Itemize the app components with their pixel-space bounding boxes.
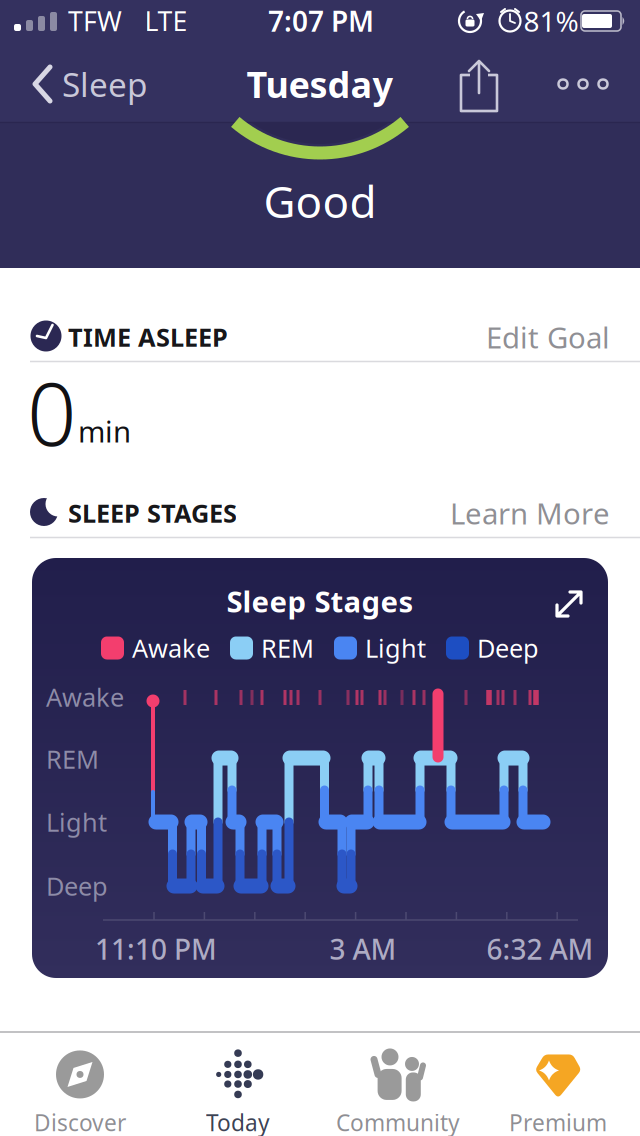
staticText: Discover — [34, 1107, 126, 1136]
staticText: TIME ASLEEP — [68, 320, 228, 354]
staticText: REM — [261, 631, 314, 665]
staticText: Sleep Stages — [226, 581, 413, 620]
staticText: Awake — [46, 680, 124, 714]
staticText: min — [78, 411, 131, 450]
staticText: 81% — [523, 2, 578, 40]
button[interactable]: Premium — [483, 1045, 633, 1136]
staticText: LTE — [144, 3, 187, 39]
staticText: Light — [46, 805, 107, 839]
button[interactable]: More — [555, 72, 611, 96]
staticText: Today — [206, 1107, 270, 1136]
staticText: Premium — [509, 1107, 607, 1136]
staticText: Deep — [477, 631, 539, 665]
staticText: Edit Goal — [486, 317, 610, 356]
staticText: Deep — [46, 869, 108, 903]
button[interactable]: Back — [16, 59, 166, 109]
staticText: 0 — [27, 354, 76, 470]
staticText: TFW — [68, 3, 122, 39]
staticText: Good — [263, 172, 376, 230]
button[interactable]: Edit Goal — [430, 315, 610, 359]
staticText: Learn More — [450, 493, 610, 532]
staticText: SLEEP STAGES — [68, 496, 237, 530]
staticText: Light — [365, 631, 426, 665]
staticText: 6:32 AM — [486, 930, 593, 968]
staticText: 3 AM — [329, 930, 396, 968]
staticText: 11:10 PM — [95, 930, 217, 968]
button[interactable]: Today — [163, 1045, 313, 1136]
button[interactable]: Community — [318, 1045, 478, 1136]
staticText: Tuesday — [246, 60, 393, 108]
staticText: 7:07 PM — [268, 2, 374, 40]
button[interactable]: Share — [457, 57, 501, 113]
button[interactable]: Learn More — [410, 491, 610, 535]
staticText: Sleep — [62, 62, 148, 106]
staticText: Community — [336, 1107, 460, 1136]
button[interactable]: Expand — [551, 586, 587, 622]
button[interactable]: Discover — [5, 1045, 155, 1136]
staticText: REM — [46, 742, 99, 776]
staticText: Awake — [132, 631, 210, 665]
